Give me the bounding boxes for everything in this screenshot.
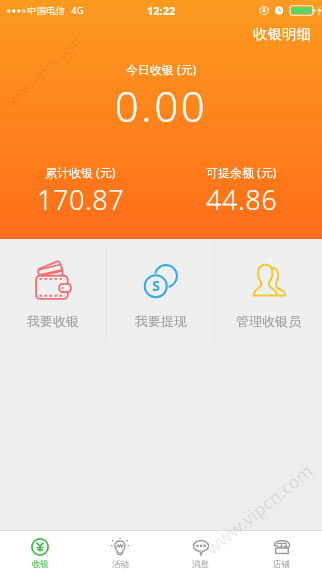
staticText: 我要收银 xyxy=(27,313,79,329)
staticText: 店铺 xyxy=(273,559,290,570)
staticText: 170.87 xyxy=(37,181,125,218)
staticText: 消息 xyxy=(192,559,209,570)
button[interactable]: 收银明细 xyxy=(237,19,322,50)
button[interactable]: 我要提现 xyxy=(107,239,214,348)
staticText: 今日收银 (元) xyxy=(0,61,322,77)
button[interactable]: 店铺 xyxy=(241,531,322,572)
staticText: 4G xyxy=(71,4,84,17)
button[interactable]: 我要收银 xyxy=(0,239,106,348)
staticText: 可提余额 (元) xyxy=(206,164,277,180)
staticText: 收银明细 xyxy=(253,25,311,43)
staticText: 44.86 xyxy=(206,181,278,218)
button[interactable]: 活动 xyxy=(80,531,160,572)
staticText: 12:22 xyxy=(147,3,176,18)
staticText: 收银 xyxy=(32,559,49,570)
staticText: 管理收银员 xyxy=(236,313,301,329)
staticText: 活动 xyxy=(112,559,129,570)
staticText: 0.00 xyxy=(0,77,322,134)
staticText: 我要提现 xyxy=(135,313,187,329)
button[interactable]: 收银 xyxy=(0,531,80,572)
staticText: 中国电信 xyxy=(27,5,65,17)
button[interactable]: 消息 xyxy=(160,531,241,572)
button[interactable]: 管理收银员 xyxy=(215,239,322,348)
staticText: 累计收银 (元) xyxy=(45,164,116,180)
